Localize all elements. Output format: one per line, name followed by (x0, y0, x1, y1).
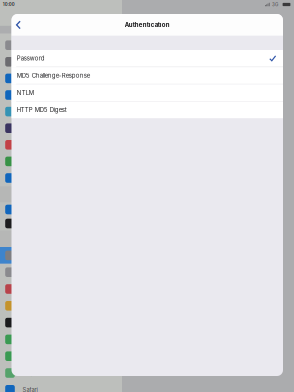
staticText: HTTP MD5 Digest (17, 106, 67, 114)
staticText: 3G (272, 2, 278, 7)
button[interactable]: App Store (0, 216, 122, 230)
button[interactable]: Display & Brightness (0, 70, 122, 87)
button[interactable]: Wallpaper (0, 120, 122, 136)
button[interactable]: Back (11, 14, 28, 36)
button[interactable]: Privacy (0, 202, 122, 216)
staticText: Authentication (125, 21, 170, 29)
staticText: Home Screen & Dock (22, 91, 78, 98)
staticText: Accessibility (22, 108, 54, 115)
staticText: Control Centre (22, 58, 59, 65)
button[interactable]: Safari (0, 381, 122, 392)
button[interactable]: HTTP MD5 Digest (11, 102, 283, 118)
staticText: 10:00 (3, 2, 15, 7)
button[interactable]: Wallet (0, 247, 122, 264)
button[interactable]: Mail (0, 281, 122, 297)
button[interactable]: Touch ID & Passcode (0, 153, 122, 170)
button[interactable]: Battery (0, 170, 122, 186)
button[interactable]: NTLM (11, 84, 283, 102)
button[interactable]: Passwords (0, 264, 122, 281)
button[interactable]: Contacts (0, 297, 122, 314)
button[interactable]: Reminders (0, 348, 122, 365)
button[interactable]: Calendar (0, 314, 122, 331)
button[interactable]: MD5 Challenge-Response (11, 67, 283, 84)
button[interactable]: Maps (0, 365, 122, 381)
staticText: Display & Brightness (22, 75, 77, 82)
button[interactable]: Control Centre (0, 53, 122, 70)
staticText: NTLM (17, 89, 34, 96)
button[interactable]: Accessibility (0, 103, 122, 120)
button[interactable]: Siri & Search (0, 136, 122, 153)
button[interactable]: Password (11, 50, 283, 67)
button[interactable]: Notes (0, 331, 122, 348)
staticText: Safari (22, 386, 37, 392)
button[interactable]: General (0, 37, 122, 53)
button[interactable]: Home Screen & Dock (0, 87, 122, 103)
staticText: Password (17, 55, 45, 62)
staticText: MD5 Challenge-Response (17, 72, 90, 79)
